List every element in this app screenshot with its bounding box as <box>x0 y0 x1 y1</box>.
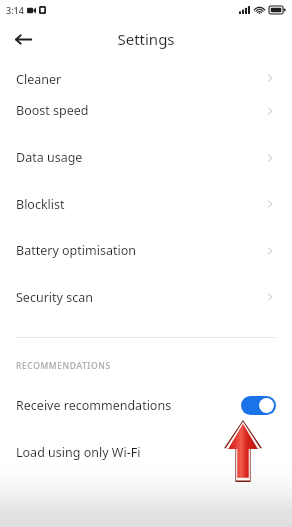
button[interactable]: Receive recommendations toggle <box>241 396 276 415</box>
staticText: Settings <box>117 29 175 49</box>
staticText: Receive recommendations <box>16 397 241 414</box>
staticText: Battery optimisation <box>16 242 136 259</box>
staticText: Data usage <box>16 149 83 166</box>
staticText: 3:14 <box>6 4 24 16</box>
staticText: Load using only Wi-Fi <box>16 444 141 461</box>
staticText: Cleaner <box>16 71 62 88</box>
button[interactable]: Boost speed <box>0 87 292 134</box>
button[interactable]: Load using only Wi-Fi <box>0 437 292 467</box>
staticText: Security scan <box>16 289 93 306</box>
button[interactable]: Back <box>8 24 38 54</box>
button[interactable]: Security scan <box>0 274 292 320</box>
button[interactable]: Cleaner <box>0 58 292 87</box>
button[interactable]: Blocklist <box>0 181 292 227</box>
button[interactable]: Battery optimisation <box>0 227 292 274</box>
staticText: Blocklist <box>16 196 65 213</box>
button[interactable]: Receive recommendations <box>0 390 292 420</box>
staticText: RECOMMENDATIONS <box>16 360 111 372</box>
button[interactable]: Data usage <box>0 134 292 181</box>
staticText: Boost speed <box>16 102 89 119</box>
